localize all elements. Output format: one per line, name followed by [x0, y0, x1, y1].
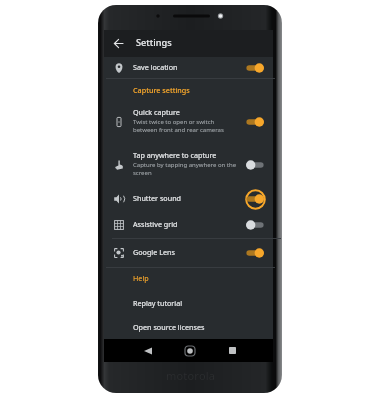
staticText: Tap anywhere to capture	[133, 150, 217, 160]
button[interactable]: Save location	[104, 57, 273, 78]
staticText: Settings	[136, 36, 172, 49]
staticText: Assistive grid	[133, 219, 178, 229]
staticText: Replay tutorial	[133, 298, 183, 308]
button[interactable]: Back	[104, 30, 132, 57]
button[interactable]: Google Lens	[104, 239, 273, 266]
button[interactable]: Quick capture	[104, 100, 273, 143]
staticText: Capture settings	[133, 85, 190, 95]
button[interactable]: Open source licenses	[104, 314, 273, 339]
staticText: motorola	[166, 368, 216, 383]
staticText: Twist twice to open or switch between fr…	[133, 118, 224, 134]
staticText: Capture by tapping anywhere on the scree…	[133, 161, 237, 177]
button[interactable]: Back	[130, 339, 166, 362]
button[interactable]: Home	[172, 339, 208, 362]
staticText: Shutter sound	[133, 193, 182, 203]
staticText: Quick capture	[133, 107, 180, 117]
button[interactable]: Recent apps	[214, 339, 250, 362]
staticText: Help	[133, 273, 149, 283]
button[interactable]: Assistive grid	[104, 212, 273, 238]
button[interactable]: Help	[104, 265, 273, 290]
button[interactable]: Tap anywhere to capture	[104, 143, 273, 186]
button[interactable]: Shutter sound	[104, 186, 273, 212]
staticText: Save location	[133, 62, 178, 72]
staticText: Google Lens	[133, 247, 175, 257]
staticText: Open source licenses	[133, 322, 205, 332]
button[interactable]: Replay tutorial	[104, 290, 273, 315]
